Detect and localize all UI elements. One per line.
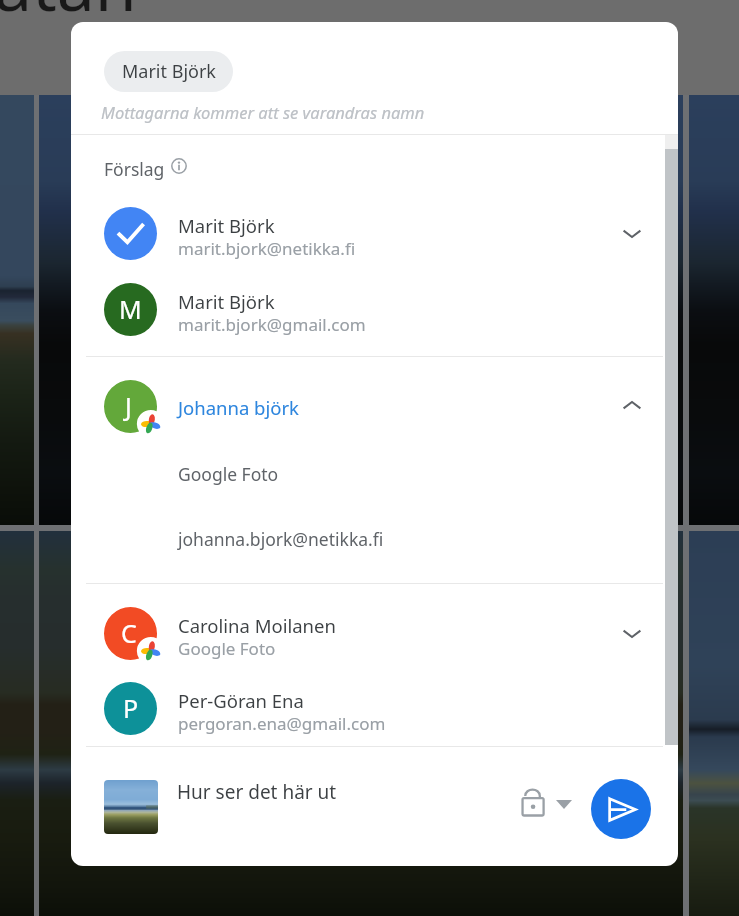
- staticText: Google Foto: [178, 637, 276, 660]
- staticText: Per-Göran Ena: [178, 688, 304, 713]
- staticText: Google Foto: [178, 462, 279, 486]
- button[interactable]: Marit Björk: [104, 51, 233, 92]
- staticText: pergoran.ena@gmail.com: [178, 712, 386, 735]
- staticText: C: [121, 616, 137, 650]
- button[interactable]: Link sharing settings: [515, 771, 587, 833]
- button[interactable]: P: [71, 670, 678, 746]
- staticText: Förslag: [104, 157, 165, 181]
- button[interactable]: J: [71, 368, 678, 444]
- button[interactable]: Collapse: [612, 386, 652, 426]
- button[interactable]: Expand: [612, 213, 652, 253]
- staticText: P: [123, 691, 139, 725]
- staticText: Johanna björk: [178, 395, 299, 420]
- staticText: Marit Björk: [122, 59, 216, 84]
- staticText: marit.bjork@gmail.com: [178, 313, 366, 336]
- staticText: M: [119, 292, 142, 326]
- staticText: Mottagarna kommer att se varandras namn: [101, 101, 425, 123]
- staticText: Hur ser det här ut: [177, 779, 337, 805]
- button[interactable]: Expand: [612, 613, 652, 653]
- staticText: atan: [0, 0, 137, 31]
- button[interactable]: Info: [168, 155, 190, 177]
- staticText: Marit Björk: [178, 289, 275, 314]
- button[interactable]: Marit Björk: [71, 195, 678, 271]
- staticText: Carolina Moilanen: [178, 613, 336, 638]
- staticText: J: [125, 389, 132, 423]
- staticText: Marit Björk: [178, 213, 275, 238]
- button[interactable]: M: [71, 271, 678, 347]
- button[interactable]: C: [71, 595, 678, 671]
- staticText: johanna.bjork@netikka.fi: [178, 527, 384, 551]
- staticText: marit.bjork@netikka.fi: [178, 237, 356, 260]
- button[interactable]: Send: [591, 779, 651, 839]
